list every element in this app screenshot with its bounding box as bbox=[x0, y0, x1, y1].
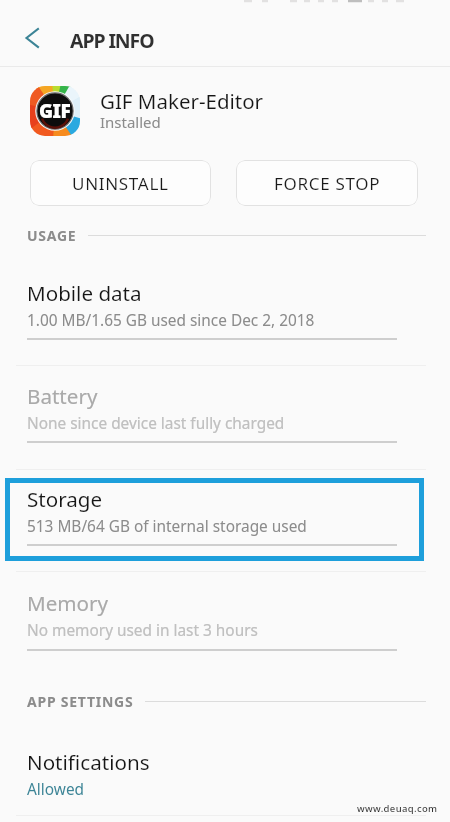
staticText: No memory used in last 3 hours bbox=[27, 620, 258, 641]
staticText: GIF bbox=[39, 98, 71, 124]
button[interactable]: Memory bbox=[0, 580, 450, 652]
staticText: UNINSTALL bbox=[72, 172, 169, 195]
staticText: Installed bbox=[100, 112, 161, 132]
staticText: Battery bbox=[27, 382, 98, 410]
button[interactable]: Battery bbox=[0, 373, 450, 445]
staticText: APP SETTINGS bbox=[27, 692, 134, 711]
staticText: Notifications bbox=[27, 748, 150, 776]
staticText: USAGE bbox=[27, 226, 77, 245]
button[interactable]: Storage bbox=[0, 476, 450, 548]
staticText: 513 MB/64 GB of internal storage used bbox=[27, 516, 307, 537]
staticText: APP INFO bbox=[70, 27, 154, 54]
staticText: 1.00 MB/1.65 GB used since Dec 2, 2018 bbox=[27, 310, 315, 331]
button[interactable]: FORCE STOP bbox=[236, 160, 418, 206]
staticText: Storage bbox=[27, 485, 103, 513]
staticText: Allowed bbox=[27, 779, 85, 800]
staticText: FORCE STOP bbox=[274, 172, 381, 195]
staticText: Mobile data bbox=[27, 279, 142, 307]
staticText: www.deuaq.com bbox=[357, 802, 438, 815]
staticText: GIF Maker-Editor bbox=[100, 87, 264, 115]
button[interactable]: Mobile data bbox=[0, 270, 450, 342]
button[interactable]: Back bbox=[12, 20, 48, 56]
staticText: Memory bbox=[27, 589, 109, 617]
button[interactable]: Notifications bbox=[0, 739, 450, 811]
button[interactable]: UNINSTALL bbox=[30, 160, 211, 206]
staticText: None since device last fully charged bbox=[27, 413, 285, 434]
